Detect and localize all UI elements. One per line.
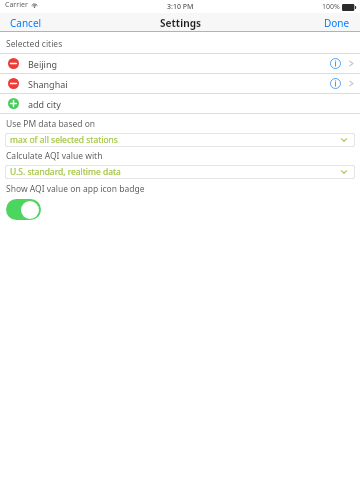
staticText: Carrier (5, 0, 28, 10)
button[interactable]: More info about Beijing (327, 55, 344, 72)
staticText: add city (28, 98, 61, 110)
button[interactable]: U.S. standard, realtime data (5, 165, 355, 179)
staticText: 3:10 PM (167, 2, 194, 12)
staticText: Calculate AQI value with (6, 150, 103, 162)
button[interactable]: Cancel (0, 14, 52, 32)
staticText: Use PM data based on (6, 118, 96, 130)
other: Remove Beijing (8, 58, 19, 69)
staticText: Show AQI value on app icon badge (6, 183, 145, 195)
button[interactable]: Add city (0, 94, 360, 113)
staticText: max of all selected stations (10, 134, 118, 146)
button[interactable]: Remove Beijing (0, 54, 360, 73)
other: Remove Shanghai (8, 78, 19, 89)
button[interactable]: Done (314, 14, 360, 32)
staticText: Shanghai (28, 78, 68, 90)
button[interactable]: Remove Shanghai (0, 74, 360, 93)
staticText: Selected cities (6, 38, 63, 50)
staticText: U.S. standard, realtime data (10, 166, 121, 178)
button[interactable]: max of all selected stations (5, 133, 355, 147)
button[interactable]: Show AQI value on app icon badge toggle,… (6, 199, 41, 220)
staticText: Beijing (28, 58, 57, 70)
button[interactable]: More info about Shanghai (327, 75, 344, 92)
staticText: Done (324, 16, 350, 30)
staticText: 100% (322, 2, 340, 12)
other: Add city (8, 98, 19, 109)
staticText: Cancel (10, 16, 42, 30)
staticText: Settings (160, 16, 201, 30)
